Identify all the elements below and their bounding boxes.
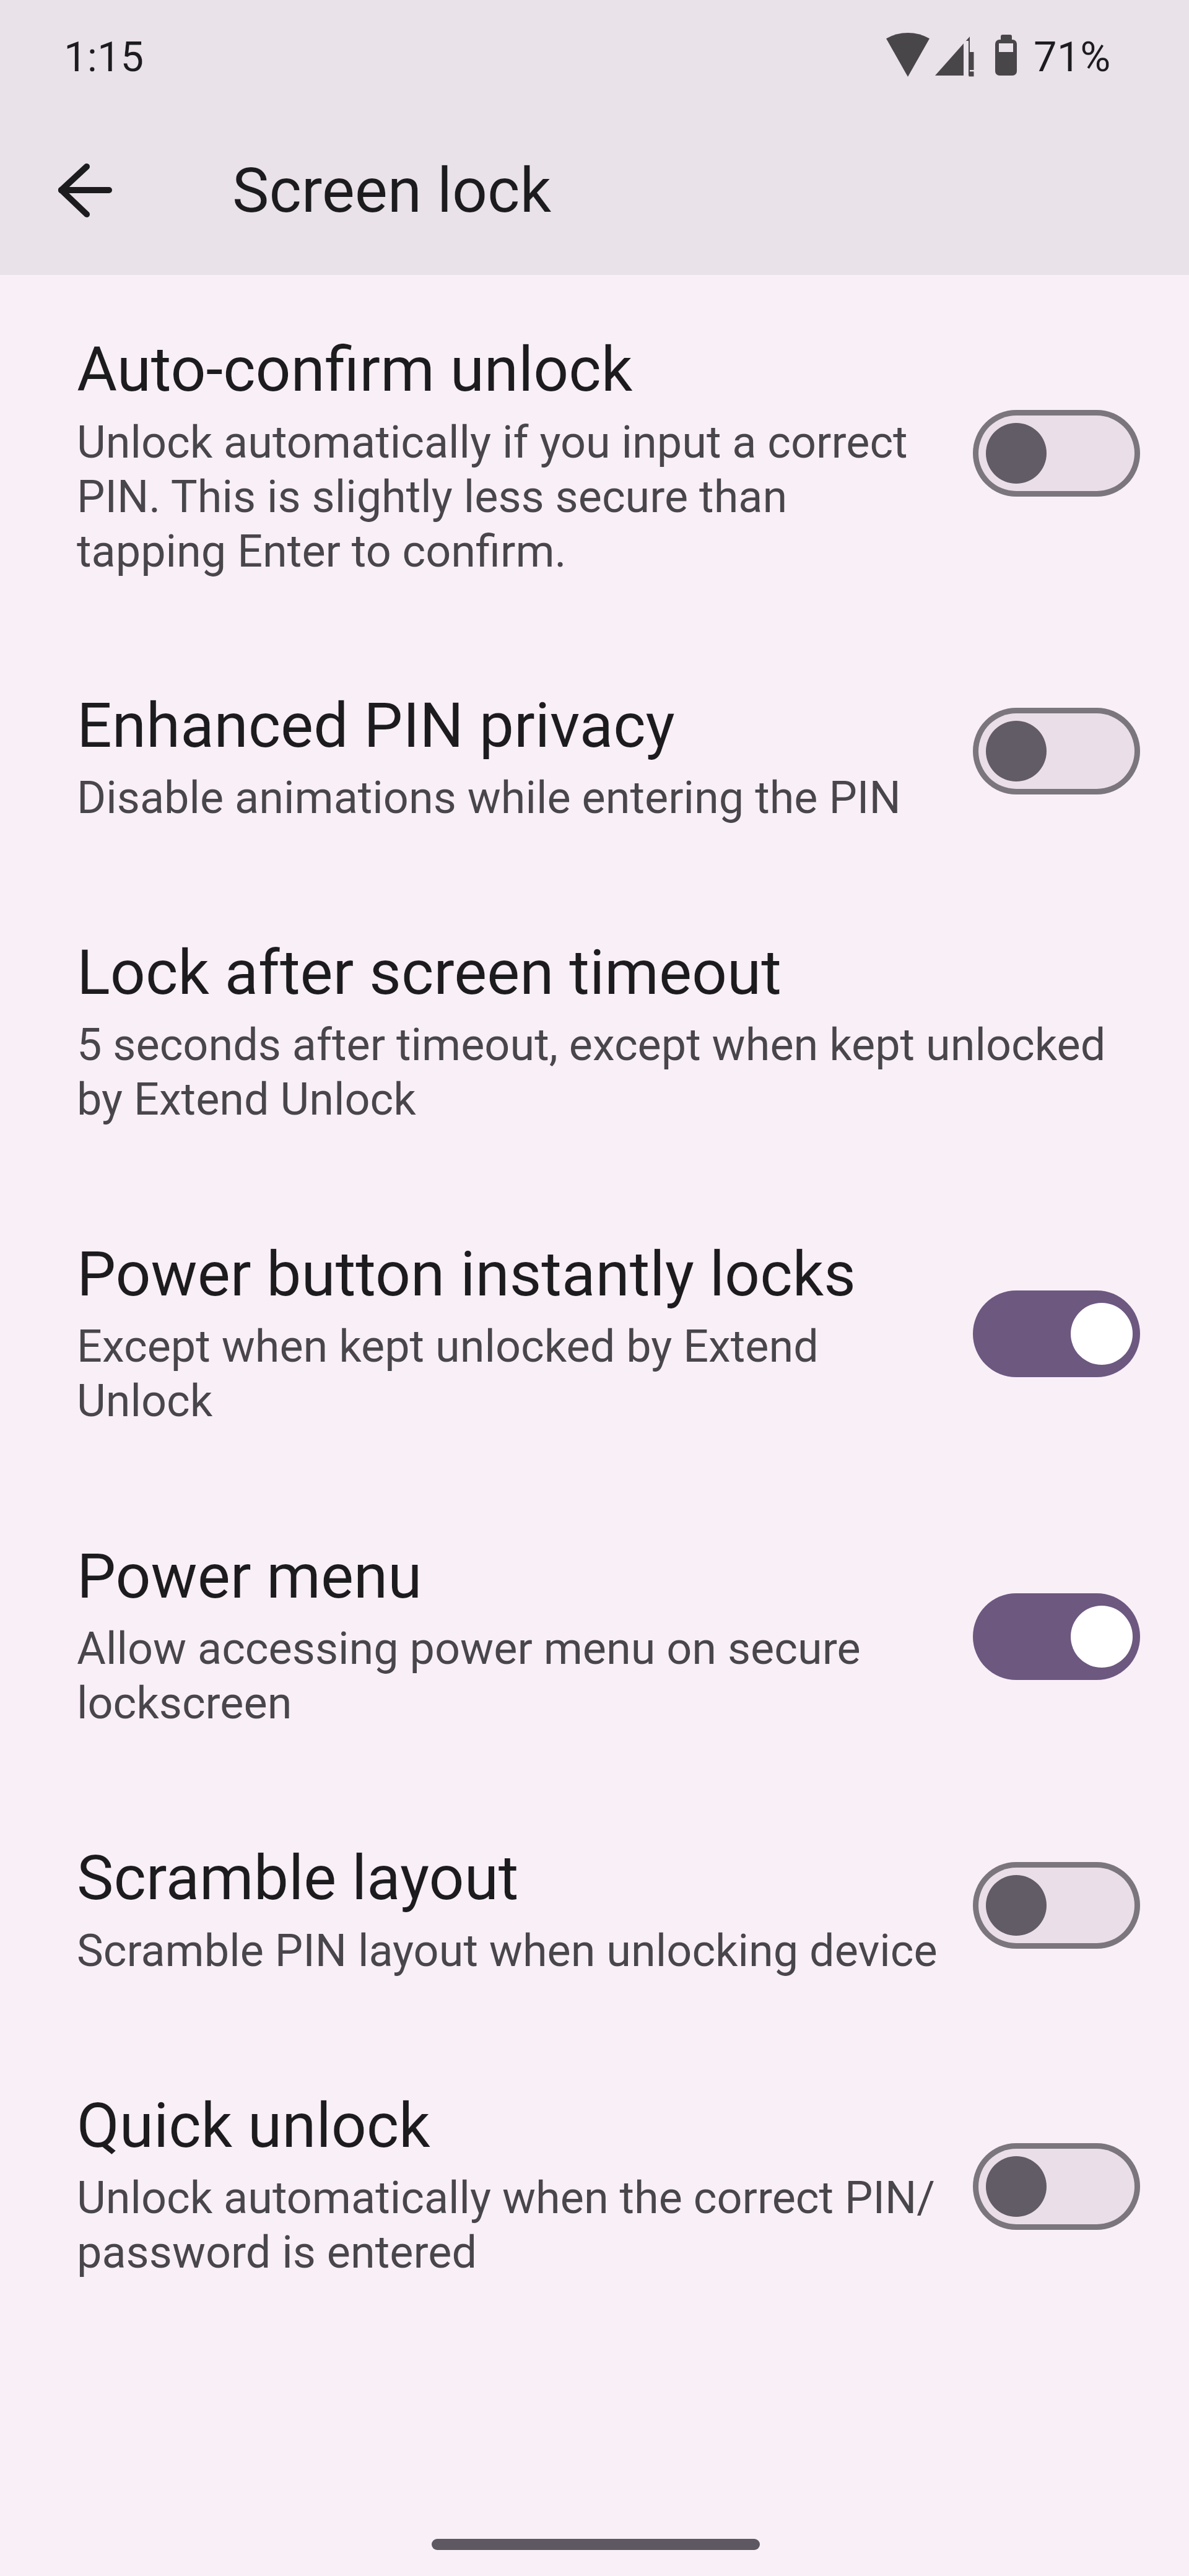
staticText: 1:15 [64, 33, 144, 82]
button[interactable]: Power button instantly locks [0, 1195, 1189, 1468]
button[interactable] [973, 2143, 1140, 2230]
staticText: Except when kept unlocked by Extend Unlo… [77, 1320, 1139, 1427]
staticText: Quick unlock [77, 2089, 430, 2162]
staticText: Scramble layout [77, 1842, 519, 1914]
button[interactable] [973, 410, 1140, 497]
button[interactable]: Scramble layout [0, 1799, 1189, 2012]
button[interactable] [973, 1593, 1140, 1680]
staticText: Unlock automatically if you input a corr… [77, 416, 1139, 577]
button[interactable]: Auto-confirm unlock [0, 291, 1189, 619]
staticText: Enhanced PIN privacy [77, 689, 675, 762]
button[interactable]: Power menu [0, 1497, 1189, 1771]
button[interactable]: Enhanced PIN privacy [0, 647, 1189, 861]
staticText: Lock after screen timeout [77, 936, 782, 1009]
button[interactable] [973, 708, 1140, 794]
button[interactable]: Lock after screen timeout [0, 895, 1189, 1164]
staticText: Disable animations while entering the PI… [77, 772, 1139, 824]
button[interactable] [973, 1862, 1140, 1949]
button[interactable] [35, 141, 134, 240]
button[interactable] [973, 1290, 1140, 1377]
staticText: Power menu [77, 1540, 422, 1612]
staticText: Screen lock [232, 154, 552, 227]
staticText: Power button instantly locks [77, 1238, 856, 1310]
staticText: Auto-confirm unlock [77, 333, 633, 406]
button[interactable]: Quick unlock [0, 2047, 1189, 2328]
staticText: Scramble PIN layout when unlocking devic… [77, 1925, 1139, 1977]
staticText: Unlock automatically when the correct PI… [77, 2172, 1139, 2278]
staticText: Allow accessing power menu on secure loc… [77, 1622, 1139, 1729]
staticText: 71% [1034, 33, 1111, 82]
staticText: 5 seconds after timeout, except when kep… [77, 1019, 1139, 1125]
